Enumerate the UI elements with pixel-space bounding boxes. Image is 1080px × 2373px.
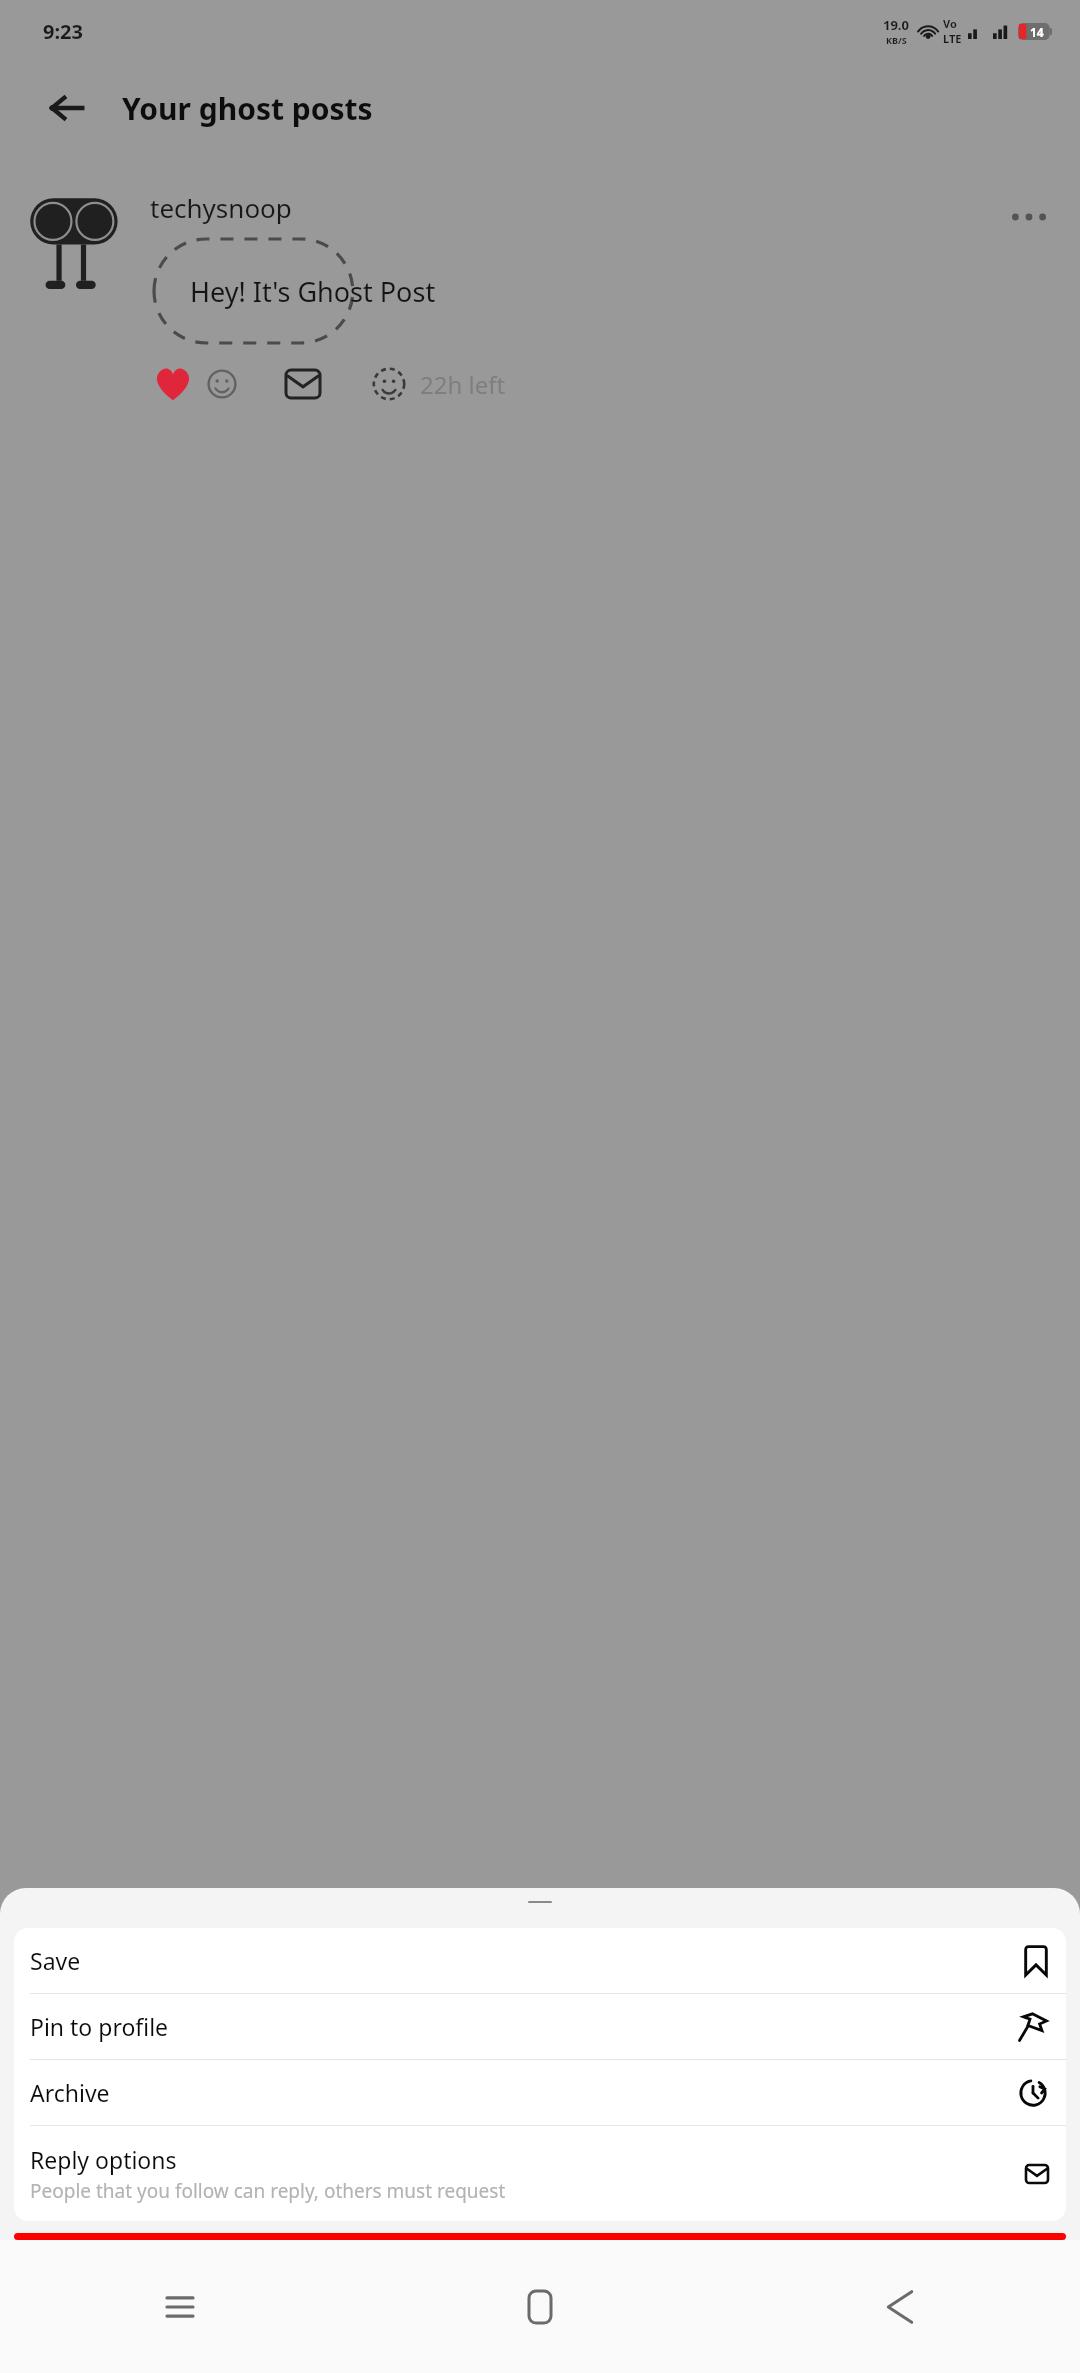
staticText: Vo — [943, 16, 957, 31]
staticText: Pin to profile — [30, 2011, 169, 2042]
button[interactable]: Pin to profile — [14, 1994, 1066, 2059]
staticText: 19.0 — [883, 16, 909, 34]
button[interactable]: Like — [150, 361, 196, 407]
staticText: Hey! It's Ghost Post — [190, 273, 436, 310]
staticText: 22h left — [420, 368, 506, 401]
button[interactable]: React — [202, 364, 242, 404]
staticText: Save — [30, 1945, 81, 1976]
button[interactable]: Home — [360, 2240, 720, 2373]
staticText: Reply options — [30, 2144, 177, 2175]
staticText: Archive — [30, 2077, 110, 2108]
staticText: KB/S — [886, 34, 907, 46]
button[interactable]: Back — [40, 81, 94, 135]
staticText: 14 — [1030, 24, 1044, 40]
button[interactable]: More options — [1006, 194, 1052, 240]
button[interactable]: Back — [720, 2240, 1080, 2373]
button[interactable]: Reply options — [14, 2126, 1066, 2221]
button[interactable]: Recents — [0, 2240, 360, 2373]
button[interactable]: Save — [14, 1928, 1066, 1993]
staticText: 9:23 — [43, 18, 83, 45]
button[interactable]: Message — [280, 361, 326, 407]
staticText: Your ghost posts — [122, 88, 373, 129]
staticText: People that you follow can reply, others… — [30, 2178, 506, 2204]
button[interactable]: Archive — [14, 2060, 1066, 2125]
staticText: LTE — [943, 31, 962, 46]
staticText: techysnoop — [150, 190, 292, 225]
